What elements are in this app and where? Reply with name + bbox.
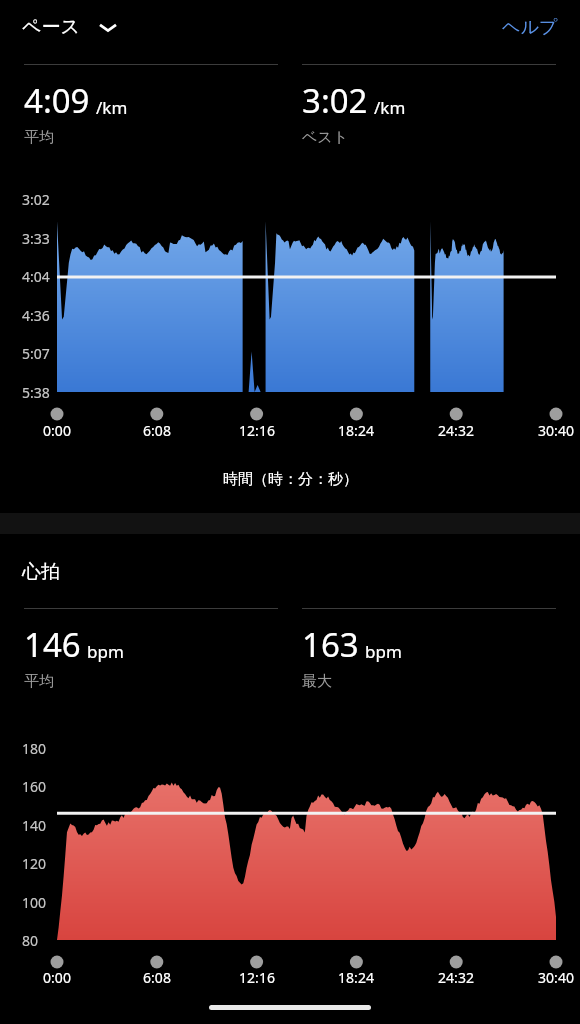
- button[interactable]: 3:02: [302, 64, 556, 147]
- staticText: 5:38: [22, 383, 50, 402]
- staticText: 6:08: [143, 968, 171, 987]
- staticText: 3:02: [302, 78, 368, 123]
- staticText: bpm: [365, 640, 402, 663]
- staticText: 5:07: [22, 344, 50, 363]
- staticText: 100: [22, 893, 47, 912]
- button[interactable]: ヘルプ: [494, 8, 566, 47]
- staticText: 0:00: [43, 968, 71, 987]
- staticText: 146: [24, 622, 81, 667]
- staticText: 180: [22, 739, 47, 758]
- staticText: 18:24: [338, 968, 374, 987]
- button[interactable]: 4:09: [24, 64, 278, 147]
- staticText: 80: [22, 931, 39, 950]
- staticText: ペース: [22, 15, 80, 39]
- staticText: 6:08: [143, 421, 171, 440]
- staticText: 3:02: [22, 190, 50, 209]
- staticText: 160: [22, 777, 47, 796]
- staticText: 140: [22, 816, 47, 835]
- staticText: 0:00: [43, 421, 71, 440]
- button[interactable]: ペース: [14, 9, 126, 45]
- staticText: 24:32: [438, 421, 474, 440]
- staticText: 4:36: [22, 306, 50, 325]
- staticText: 心拍: [22, 560, 60, 584]
- staticText: 平均: [24, 128, 54, 147]
- staticText: ベスト: [302, 128, 349, 147]
- staticText: 18:24: [338, 421, 374, 440]
- staticText: 12:16: [239, 421, 275, 440]
- staticText: ヘルプ: [502, 16, 558, 39]
- staticText: /km: [96, 96, 128, 119]
- button[interactable]: 163: [302, 608, 556, 691]
- staticText: 3:33: [22, 229, 50, 248]
- staticText: 163: [302, 622, 359, 667]
- staticText: 24:32: [438, 968, 474, 987]
- staticText: 12:16: [239, 968, 275, 987]
- staticText: 最大: [302, 672, 332, 691]
- staticText: bpm: [87, 640, 124, 663]
- staticText: /km: [374, 96, 406, 119]
- staticText: 30:40: [538, 968, 574, 987]
- staticText: 120: [22, 854, 47, 873]
- staticText: 30:40: [538, 421, 574, 440]
- staticText: 4:09: [24, 78, 90, 123]
- staticText: 平均: [24, 672, 54, 691]
- staticText: 4:04: [22, 267, 50, 286]
- button[interactable]: 146: [24, 608, 278, 691]
- staticText: 時間（時：分：秒）: [223, 470, 358, 489]
